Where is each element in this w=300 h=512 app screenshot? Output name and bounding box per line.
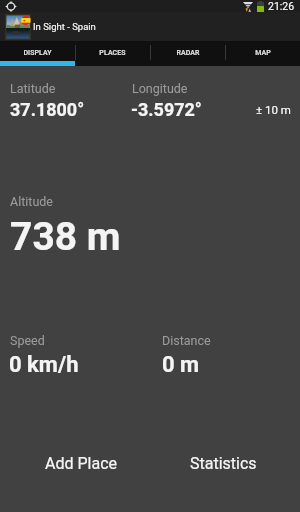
button[interactable]: In Sight - Spain xyxy=(0,12,300,41)
staticText: -3.5972° xyxy=(131,99,202,120)
staticText: 0 m xyxy=(162,352,200,378)
staticText: MAP xyxy=(255,49,271,57)
button[interactable]: RADAR xyxy=(150,41,225,66)
staticText: Distance xyxy=(162,333,211,348)
button[interactable]: MAP xyxy=(225,41,300,66)
staticText: 21:26 xyxy=(268,0,295,12)
staticText: 738 m xyxy=(10,214,121,260)
staticText: Add Place xyxy=(45,454,117,473)
staticText: PLACES xyxy=(99,49,126,57)
staticText: ± 10 m xyxy=(256,103,291,116)
staticText: Latitude xyxy=(10,81,56,96)
staticText: DISPLAY xyxy=(23,49,52,57)
staticText: 0 km/h xyxy=(9,352,79,378)
button[interactable]: DISPLAY xyxy=(0,41,75,66)
staticText: In Sight - Spain xyxy=(33,21,96,32)
staticText: Statistics xyxy=(190,454,257,473)
button[interactable]: Add Place xyxy=(45,454,117,473)
staticText: Speed xyxy=(10,333,45,348)
staticText: RADAR xyxy=(176,49,200,57)
button[interactable]: PLACES xyxy=(75,41,150,66)
button[interactable]: Statistics xyxy=(190,454,257,473)
staticText: 37.1800° xyxy=(10,99,85,120)
staticText: Altitude xyxy=(10,194,53,209)
staticText: Longitude xyxy=(132,81,188,96)
